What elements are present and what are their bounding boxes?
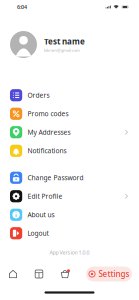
button[interactable]: Settings — [86, 266, 132, 281]
staticText: Logout — [28, 229, 49, 238]
button[interactable]: Cart — [52, 265, 78, 283]
button[interactable]: About us — [0, 205, 139, 224]
button[interactable]: Home — [0, 265, 26, 283]
button[interactable]: Change Password — [0, 168, 139, 187]
staticText: Notifications — [28, 146, 67, 155]
staticText: Promo codes — [28, 109, 69, 118]
staticText: bikram@gmail.com — [44, 48, 80, 53]
staticText: My Addresses — [28, 128, 71, 137]
staticText: App Version 1.0.0 — [49, 249, 89, 256]
staticText: About us — [28, 210, 55, 219]
button[interactable]: Edit Profile — [0, 187, 139, 205]
button[interactable]: Promo codes — [0, 104, 139, 123]
button[interactable]: My Addresses — [0, 123, 139, 141]
staticText: 6:04 — [17, 3, 27, 11]
staticText: Settings — [98, 269, 129, 279]
button[interactable]: Logout — [0, 224, 139, 242]
button[interactable]: Orders — [0, 86, 139, 104]
staticText: Test name — [44, 36, 85, 47]
staticText: Orders — [28, 91, 50, 100]
staticText: Edit Profile — [28, 192, 63, 201]
button[interactable]: Notifications — [0, 141, 139, 160]
button[interactable]: Categories — [26, 265, 52, 283]
staticText: Change Password — [28, 173, 84, 182]
